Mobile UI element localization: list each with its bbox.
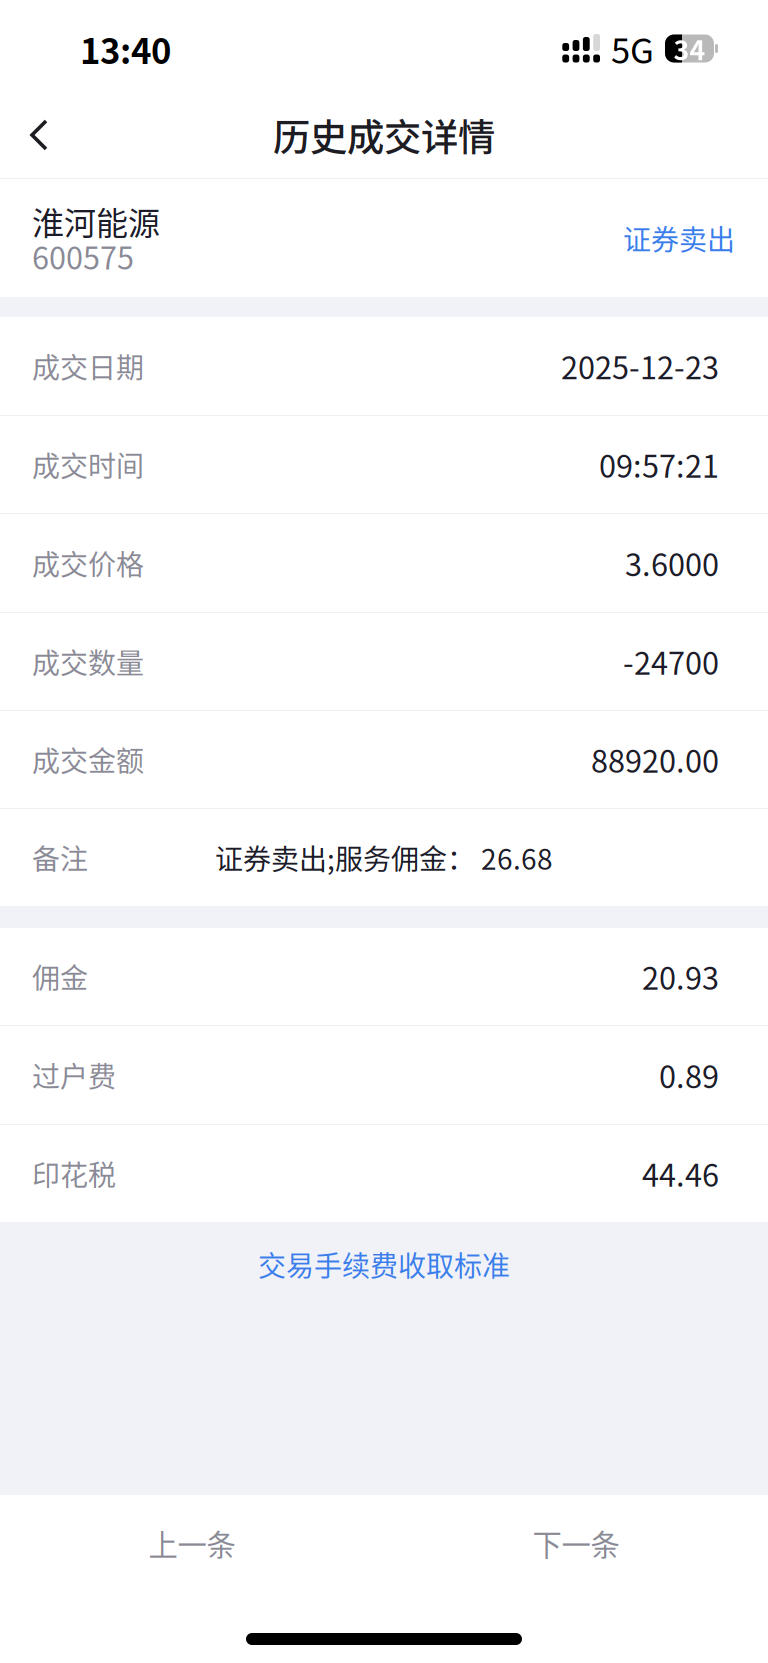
staticText: 过户费 (32, 1055, 116, 1095)
staticText: 历史成交详情 (273, 108, 495, 162)
staticText: 2025-12-23 (561, 344, 719, 388)
staticText: 44.46 (642, 1151, 719, 1196)
staticText: 交易手续费收取标准 (258, 1244, 510, 1284)
staticText: 淮河能源 (32, 198, 160, 244)
staticText: 20.93 (642, 954, 719, 999)
button[interactable]: Back (0, 92, 76, 178)
staticText: 成交日期 (32, 346, 144, 386)
button[interactable]: 上一条 (0, 1495, 384, 1591)
staticText: 证券卖出;服务佣金： 26.68 (215, 837, 553, 878)
staticText: 成交金额 (32, 739, 144, 780)
button[interactable]: 证券卖出 (623, 218, 735, 258)
button[interactable]: 交易手续费收取标准 (0, 1222, 768, 1306)
staticText: 13:40 (80, 24, 171, 74)
staticText: 09:57:21 (599, 442, 719, 487)
staticText: 备注 (32, 837, 88, 878)
staticText: 成交数量 (32, 641, 144, 682)
staticText: 成交时间 (32, 444, 144, 485)
staticText: 0.89 (659, 1053, 719, 1097)
staticText: 600575 (32, 234, 134, 278)
staticText: -24700 (623, 639, 719, 684)
staticText: 88920.00 (591, 737, 719, 782)
button[interactable]: 下一条 (384, 1495, 768, 1591)
staticText: 佣金 (32, 956, 88, 997)
staticText: 印花税 (32, 1153, 116, 1194)
staticText: 下一条 (532, 1522, 619, 1564)
staticText: 3.6000 (625, 541, 719, 585)
staticText: 成交价格 (32, 543, 144, 583)
staticText: 34 (673, 29, 705, 68)
staticText: 证券卖出 (623, 218, 735, 258)
staticText: 5G (611, 23, 654, 74)
staticText: 上一条 (148, 1522, 235, 1564)
